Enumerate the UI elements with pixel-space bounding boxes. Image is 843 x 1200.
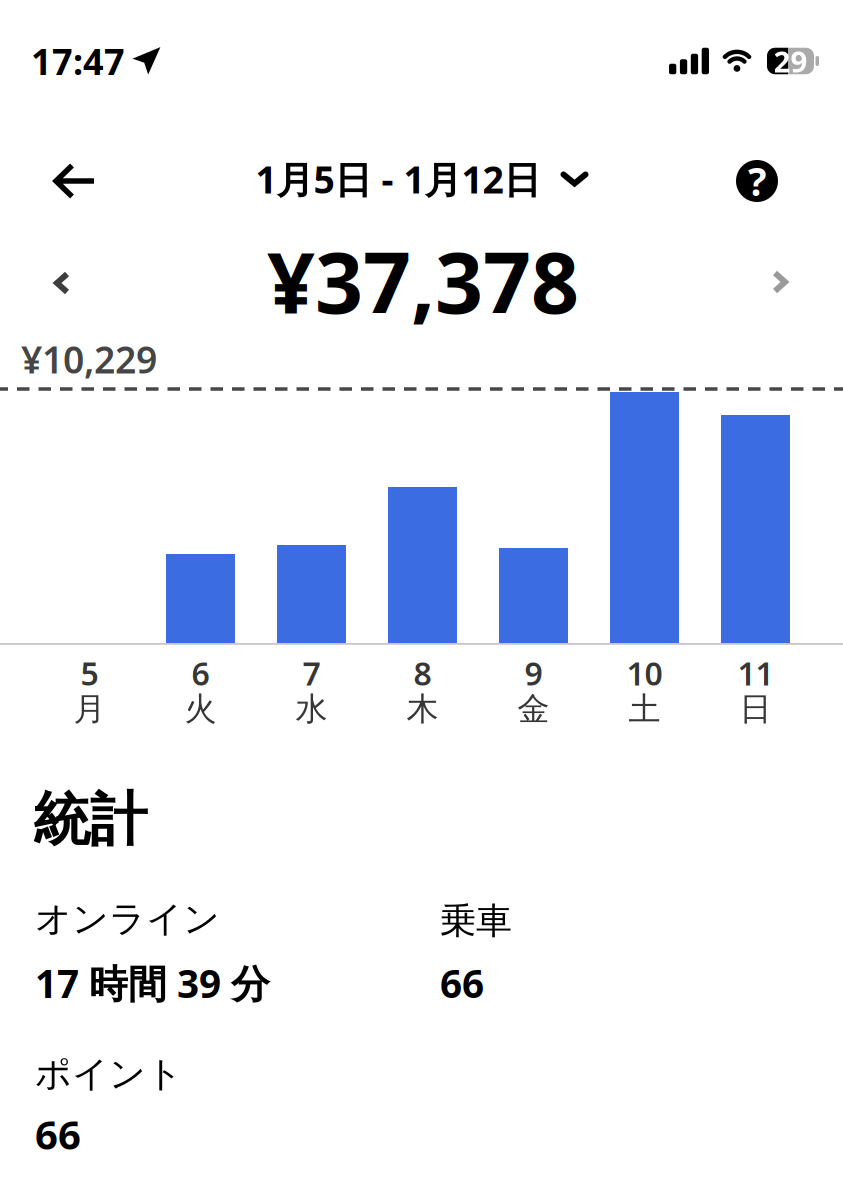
staticText: 8 [413,652,431,694]
staticText: 66 [35,1107,81,1160]
staticText: 月 [73,689,105,729]
staticText: 9 [524,652,542,694]
staticText: オンライン [35,897,220,941]
staticText: 10 [626,652,662,694]
staticText: 乗車 [440,899,512,943]
staticText: 5 [80,652,98,694]
staticText: 11 [737,652,773,694]
button[interactable]: Previous week [40,261,84,305]
staticText: 1月5日 - 1月12日 [255,154,540,204]
staticText: 日 [739,689,771,729]
button[interactable]: Help [736,155,778,207]
staticText: ¥37,378 [267,225,579,337]
staticText: 7 [302,652,320,694]
button[interactable]: Back [45,155,105,207]
button[interactable]: Next week [758,260,802,304]
staticText: 水 [295,689,327,729]
staticText: 統計 [33,785,147,855]
staticText: 17:47 [31,37,125,85]
staticText: 金 [517,689,549,729]
button[interactable]: 1月5日 - 1月12日 [255,154,588,204]
staticText: 土 [628,689,660,729]
staticText: 6 [191,652,209,694]
staticText: 木 [406,689,438,729]
staticText: ポイント [35,1052,183,1096]
staticText: 17 時間 39 分 [35,957,270,1009]
staticText: 火 [184,689,216,729]
staticText: 66 [440,957,484,1009]
staticText: ? [748,155,766,207]
staticText: ¥10,229 [21,334,157,384]
staticText: 29 [773,41,807,80]
